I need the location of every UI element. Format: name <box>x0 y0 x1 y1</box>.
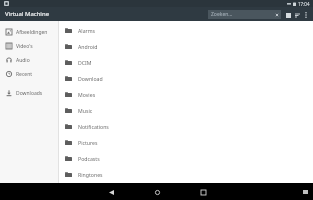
button[interactable]: DCIM <box>59 54 313 70</box>
button[interactable]: Back <box>105 186 117 198</box>
button[interactable]: Afbeeldingen <box>0 25 58 39</box>
button[interactable]: Clear search <box>274 12 279 17</box>
button[interactable]: Home <box>151 186 163 198</box>
button[interactable]: Zoeken... <box>208 10 281 19</box>
staticText: Audio <box>16 57 30 64</box>
staticText: Pictures <box>78 139 98 146</box>
staticText: Movies <box>78 91 96 98</box>
staticText: Video's <box>16 43 33 50</box>
button[interactable]: Downloads <box>0 86 58 100</box>
button[interactable]: More options <box>302 11 310 19</box>
staticText: Zoeken... <box>211 11 233 18</box>
button[interactable]: Pictures <box>59 134 313 150</box>
button[interactable]: Keyboard <box>301 188 309 196</box>
staticText: Alarms <box>78 27 96 34</box>
button[interactable]: Android <box>59 38 313 54</box>
staticText: Recent <box>16 71 33 78</box>
staticText: Notifications <box>78 123 109 130</box>
staticText: Afbeeldingen <box>16 29 48 36</box>
staticText: Downloads <box>16 90 43 97</box>
staticText: 17:04 <box>298 1 310 7</box>
button[interactable]: Alarms <box>59 22 313 38</box>
staticText: Virtual Machine <box>5 10 50 18</box>
button[interactable]: Download <box>59 70 313 86</box>
button[interactable]: Video's <box>0 39 58 53</box>
button[interactable]: Sort <box>293 11 301 19</box>
button[interactable]: Ringtones <box>59 166 313 182</box>
button[interactable]: Movies <box>59 86 313 102</box>
staticText: Download <box>78 75 103 82</box>
staticText: Ringtones <box>78 171 103 178</box>
button[interactable]: Audio <box>0 53 58 67</box>
staticText: DCIM <box>78 59 92 66</box>
button[interactable]: Recents <box>197 186 209 198</box>
button[interactable]: Podcasts <box>59 150 313 166</box>
button[interactable]: Recent <box>0 67 58 81</box>
button[interactable]: Grid view <box>284 11 292 19</box>
button[interactable]: Notifications <box>59 118 313 134</box>
staticText: Music <box>78 107 93 114</box>
staticText: Podcasts <box>78 155 100 162</box>
staticText: Android <box>78 43 98 50</box>
button[interactable]: Music <box>59 102 313 118</box>
